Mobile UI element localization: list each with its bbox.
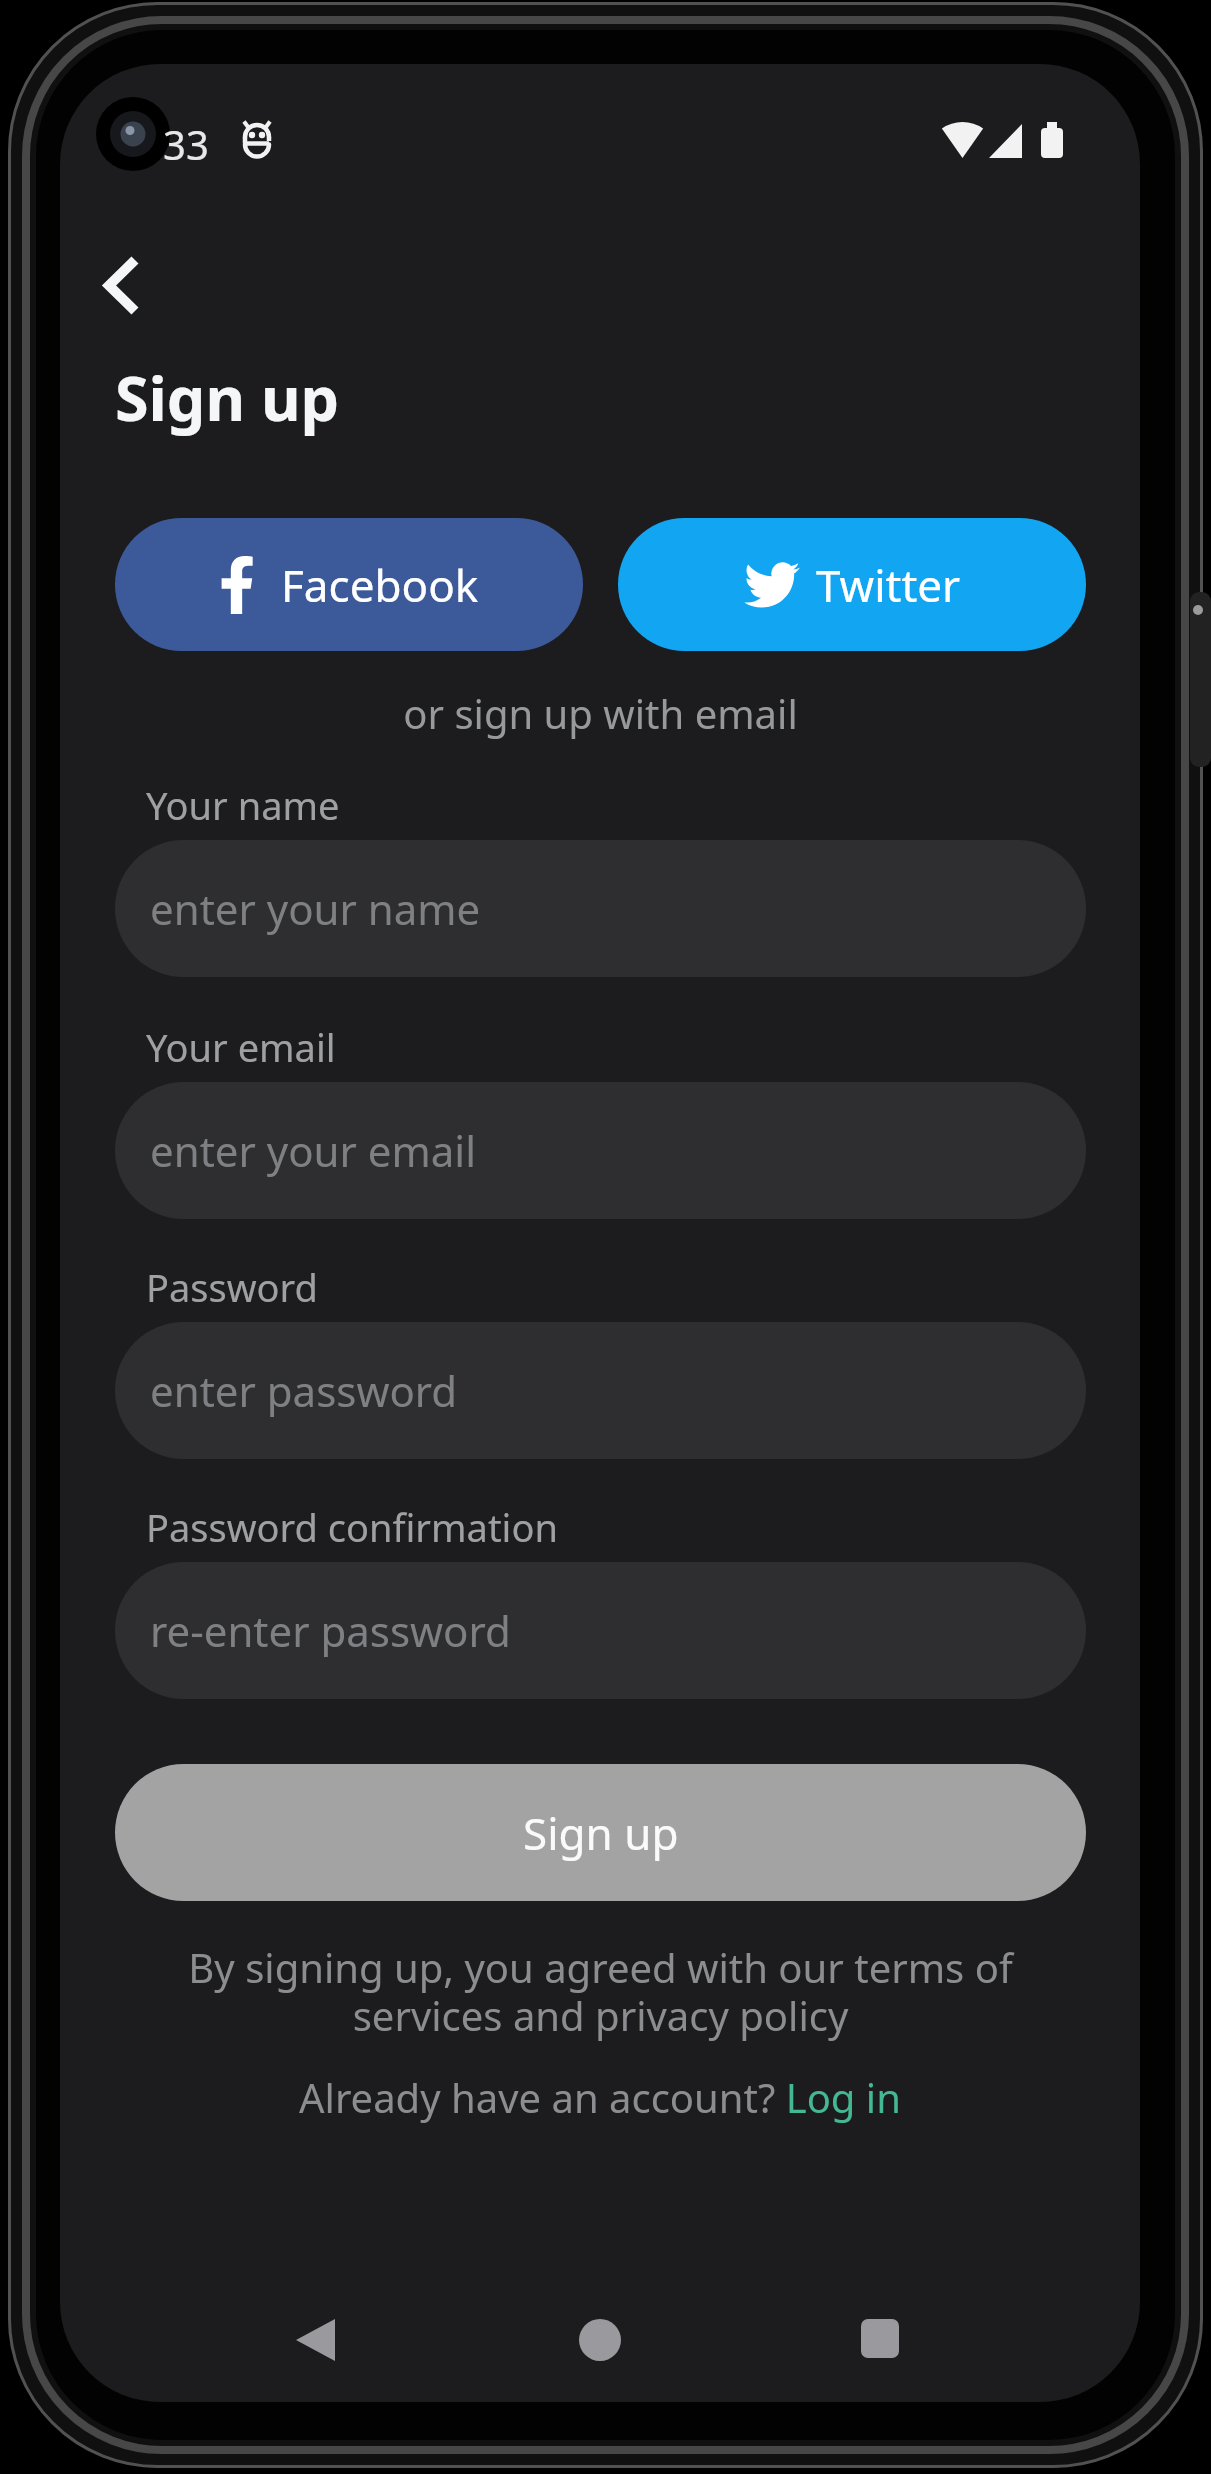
staticText: Twitter <box>816 555 961 615</box>
button[interactable] <box>89 240 155 330</box>
staticText: enter your name <box>150 880 481 937</box>
staticText: re-enter password <box>150 1602 511 1659</box>
button[interactable] <box>560 2299 640 2381</box>
staticText: Sign up <box>523 1803 679 1863</box>
button[interactable]: enter your email <box>115 1082 1086 1219</box>
button[interactable]: Already have an account? Log in <box>299 2070 901 2124</box>
staticText: 33 <box>163 117 209 171</box>
staticText: Facebook <box>281 555 479 615</box>
staticText: Password <box>146 1261 318 1313</box>
staticText: Your name <box>146 779 340 831</box>
staticText: enter password <box>150 1362 458 1419</box>
button[interactable]: enter your name <box>115 840 1086 977</box>
staticText: By signing up, you agreed with our terms… <box>188 1940 1013 2042</box>
button[interactable]: Twitter <box>618 518 1086 651</box>
button[interactable] <box>840 2299 920 2381</box>
staticText: or sign up with email <box>403 686 798 740</box>
staticText: Your email <box>146 1021 336 1073</box>
button[interactable]: re-enter password <box>115 1562 1086 1699</box>
button[interactable]: enter password <box>115 1322 1086 1459</box>
staticText: enter your email <box>150 1122 477 1179</box>
button[interactable]: Facebook <box>115 518 583 651</box>
button[interactable]: Sign up <box>115 1764 1086 1901</box>
staticText: Sign up <box>115 356 340 439</box>
staticText: Password confirmation <box>146 1501 558 1553</box>
button[interactable] <box>276 2299 356 2381</box>
